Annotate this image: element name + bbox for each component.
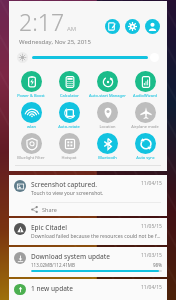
- other: Screenshot notification: [14, 180, 26, 192]
- staticText: Share: [42, 206, 57, 213]
- other: Epic Citadel notification: [14, 223, 26, 235]
- staticText: 11/05/15: [141, 223, 162, 230]
- button[interactable]: User profile: [145, 19, 160, 34]
- other: Update notification: [14, 284, 26, 295]
- button[interactable]: Airplane mode: [126, 100, 164, 131]
- staticText: 11/03/15: [141, 252, 162, 259]
- staticText: Download system update: [31, 252, 141, 261]
- button[interactable]: Auto-rotate: [50, 100, 88, 131]
- staticText: Touch to view your screenshot.: [31, 190, 104, 197]
- staticText: wlan: [27, 124, 36, 129]
- staticText: Power & Boost: [17, 93, 45, 98]
- staticText: Screenshot captured.: [31, 180, 141, 189]
- staticText: 11/04/15: [141, 284, 162, 291]
- staticText: Hotspot: [61, 155, 77, 160]
- button[interactable]: Edit quick settings: [105, 19, 120, 34]
- button[interactable]: Screenshot notification: [9, 175, 167, 202]
- staticText: Wednesday, Nov 25, 2015: [19, 38, 91, 46]
- staticText: Auto-rotate: [58, 124, 80, 129]
- staticText: Auto-start Manager: [89, 93, 126, 98]
- staticText: 11/04/15: [141, 180, 162, 187]
- button[interactable]: Bluelight Filter: [12, 131, 50, 162]
- staticText: Download failed because the resources co…: [31, 233, 162, 240]
- staticText: 98%: [153, 262, 162, 268]
- staticText: Epic Citadel: [31, 223, 141, 232]
- button[interactable]: Power & Boost: [12, 69, 50, 100]
- button[interactable]: Calculator: [50, 69, 88, 100]
- button[interactable]: Bluetooth: [88, 131, 126, 162]
- staticText: AM: [67, 25, 77, 33]
- staticText: AudioWizard: [133, 93, 157, 98]
- button[interactable]: Update notification: [9, 279, 167, 300]
- button[interactable]: Settings: [125, 19, 140, 34]
- button[interactable]: wlan: [12, 100, 50, 131]
- staticText: 2:17: [19, 6, 65, 37]
- staticText: Auto sync: [136, 155, 155, 160]
- staticText: Bluetooth: [98, 155, 117, 160]
- staticText: Calculator: [60, 93, 79, 98]
- staticText: Location: [99, 124, 116, 129]
- staticText: 113.02MB/112.41MB: [31, 262, 153, 268]
- button[interactable]: Hotspot: [50, 131, 88, 162]
- button[interactable]: Auto sync: [126, 131, 164, 162]
- staticText: Airplane mode: [131, 124, 159, 129]
- button[interactable]: Epic Citadel notification: [9, 218, 167, 245]
- button[interactable]: Location: [88, 100, 126, 131]
- button[interactable]: Download system update: [9, 247, 167, 277]
- staticText: Bluelight Filter: [17, 155, 45, 160]
- button[interactable]: Share: [9, 203, 167, 216]
- button[interactable]: [17, 50, 159, 64]
- button[interactable]: Auto-start Manager: [88, 69, 126, 100]
- button[interactable]: AudioWizard: [126, 69, 164, 100]
- staticText: 1 new update: [31, 284, 141, 293]
